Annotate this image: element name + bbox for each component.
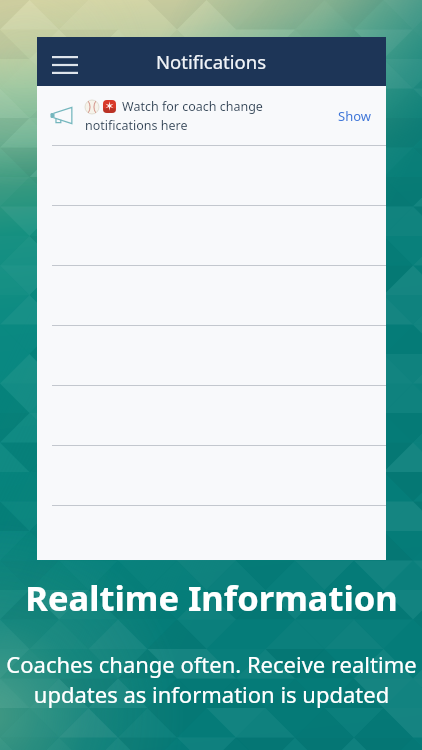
- button[interactable]: Watch for coach change: [37, 86, 386, 145]
- staticText: Show: [338, 107, 371, 125]
- button[interactable]: Show: [322, 86, 386, 145]
- staticText: Realtime Information: [25, 574, 398, 621]
- staticText: Notifications: [156, 49, 267, 74]
- staticText: Coaches change often. Receive realtime u…: [6, 649, 417, 709]
- staticText: notifications here: [85, 117, 188, 134]
- staticText: Watch for coach change: [122, 98, 263, 115]
- button[interactable]: Open navigation menu: [37, 37, 89, 86]
